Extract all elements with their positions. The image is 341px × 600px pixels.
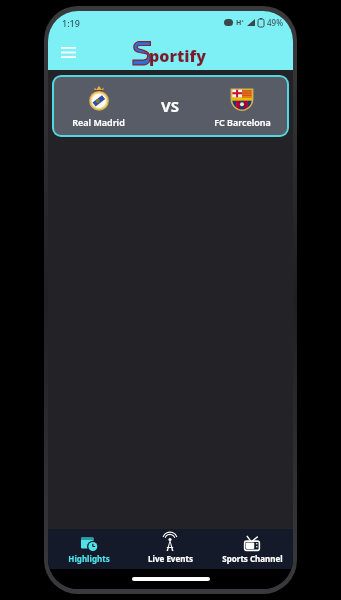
staticText: portify — [149, 45, 206, 67]
button[interactable]: Highlights — [48, 529, 129, 569]
staticText: Highlights — [68, 553, 110, 564]
staticText: 49% — [267, 17, 283, 28]
staticText: FC Barcelona — [214, 116, 271, 128]
staticText: Live Events — [148, 553, 193, 564]
button[interactable]: Open navigation menu — [54, 38, 82, 66]
staticText: 1:19 — [62, 17, 80, 29]
staticText: Sports Channel — [222, 553, 283, 564]
button[interactable]: Live Events — [129, 529, 211, 569]
staticText: H⁺ — [236, 18, 244, 28]
button[interactable]: Sports Channel — [211, 529, 293, 569]
staticText: Real Madrid — [72, 116, 125, 128]
staticText: VS — [161, 96, 180, 116]
button[interactable]: Real Madrid — [52, 75, 289, 137]
